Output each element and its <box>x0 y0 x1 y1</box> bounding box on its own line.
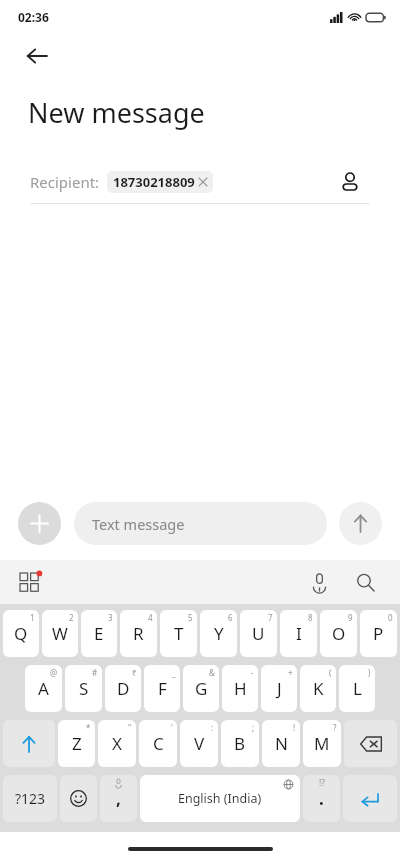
button[interactable]: Add attachment <box>18 502 61 545</box>
button[interactable]: E <box>81 610 117 657</box>
staticText: V <box>194 732 205 755</box>
button[interactable]: X <box>98 720 136 767</box>
staticText: @ <box>50 667 58 678</box>
staticText: 4 <box>148 612 153 623</box>
button[interactable]: U <box>240 610 277 657</box>
button[interactable]: Q <box>3 610 39 657</box>
button[interactable]: Keyboard menu <box>10 563 48 601</box>
staticText: 9 <box>348 612 353 623</box>
button[interactable]: D <box>105 665 141 712</box>
staticText: ( <box>329 667 332 678</box>
button[interactable]: Shift <box>3 720 55 767</box>
staticText: : <box>211 722 214 733</box>
staticText: U <box>252 622 265 645</box>
button[interactable]: Back <box>16 35 58 77</box>
staticText: P <box>373 622 384 645</box>
staticText: F <box>158 677 167 700</box>
button[interactable]: L <box>339 665 375 712</box>
button[interactable]: ?123 <box>3 775 57 822</box>
staticText: ?123 <box>15 789 46 808</box>
button[interactable]: Emoji <box>60 775 97 822</box>
staticText: _ <box>172 667 176 678</box>
staticText: ! <box>293 722 296 733</box>
staticText: N <box>275 732 288 755</box>
staticText: # <box>92 667 98 678</box>
button[interactable]: N <box>262 720 300 767</box>
staticText: X <box>112 732 122 755</box>
button[interactable]: Comma <box>100 775 137 822</box>
staticText: , <box>116 787 121 810</box>
button[interactable]: Backspace <box>344 720 397 767</box>
staticText: W <box>52 622 68 645</box>
staticText: A <box>38 677 49 700</box>
staticText: 3 <box>108 612 113 623</box>
button[interactable]: Text message <box>74 502 327 545</box>
staticText: Recipient: <box>30 172 100 192</box>
button[interactable]: W <box>42 610 78 657</box>
button[interactable]: S <box>65 665 102 712</box>
staticText: K <box>313 677 324 700</box>
staticText: & <box>209 667 215 678</box>
staticText: ; <box>252 722 255 733</box>
button[interactable]: Recipient: <box>30 161 370 203</box>
staticText: Y <box>214 622 224 645</box>
button[interactable]: O <box>320 610 357 657</box>
button[interactable]: A <box>25 665 62 712</box>
staticText: 5 <box>188 612 193 623</box>
staticText: 8 <box>308 612 313 623</box>
button[interactable]: Send <box>339 502 382 545</box>
staticText: O <box>332 622 346 645</box>
button[interactable]: F <box>144 665 180 712</box>
staticText: Z <box>72 732 82 755</box>
button[interactable]: Period <box>303 775 340 822</box>
staticText: C <box>153 732 164 755</box>
staticText: 02:36 <box>18 9 49 25</box>
staticText: ? <box>333 722 337 733</box>
staticText: 18730218809 <box>113 173 195 191</box>
button[interactable]: B <box>221 720 259 767</box>
staticText: G <box>195 677 208 700</box>
staticText: - <box>251 667 254 678</box>
staticText: + <box>288 667 293 678</box>
staticText: New message <box>28 94 205 131</box>
button[interactable]: T <box>160 610 197 657</box>
staticText: 2 <box>69 612 74 623</box>
button[interactable]: P <box>360 610 397 657</box>
button[interactable]: Search <box>346 563 384 601</box>
staticText: H <box>234 677 247 700</box>
staticText: M <box>314 732 330 755</box>
button[interactable]: Choose contact <box>330 162 370 202</box>
button[interactable]: Y <box>200 610 237 657</box>
staticText: . <box>319 787 324 810</box>
staticText: Q <box>14 622 28 645</box>
button[interactable]: Enter <box>343 775 397 822</box>
staticText: English (India) <box>178 790 262 807</box>
staticText: " <box>128 722 132 733</box>
staticText: B <box>234 732 246 755</box>
button[interactable]: G <box>183 665 219 712</box>
button[interactable]: J <box>261 665 297 712</box>
button[interactable]: H <box>222 665 258 712</box>
button[interactable]: C <box>139 720 177 767</box>
staticText: R <box>133 622 144 645</box>
staticText: Text message <box>92 514 185 534</box>
staticText: ) <box>368 667 371 678</box>
button[interactable]: English (India) <box>140 775 300 822</box>
staticText: E <box>94 622 104 645</box>
button[interactable]: I <box>280 610 317 657</box>
button[interactable]: V <box>180 720 218 767</box>
staticText: J <box>277 677 282 700</box>
staticText: L <box>353 677 362 700</box>
staticText: 7 <box>268 612 273 623</box>
button[interactable]: R <box>120 610 157 657</box>
button[interactable]: M <box>303 720 341 767</box>
staticText: 6 <box>228 612 233 623</box>
button[interactable]: Voice input <box>300 563 338 601</box>
staticText: ' <box>171 722 173 733</box>
button[interactable]: Z <box>58 720 95 767</box>
button[interactable]: K <box>300 665 336 712</box>
staticText: S <box>79 677 89 700</box>
staticText: D <box>117 677 130 700</box>
staticText: T <box>174 622 184 645</box>
staticText: !? <box>319 777 325 789</box>
